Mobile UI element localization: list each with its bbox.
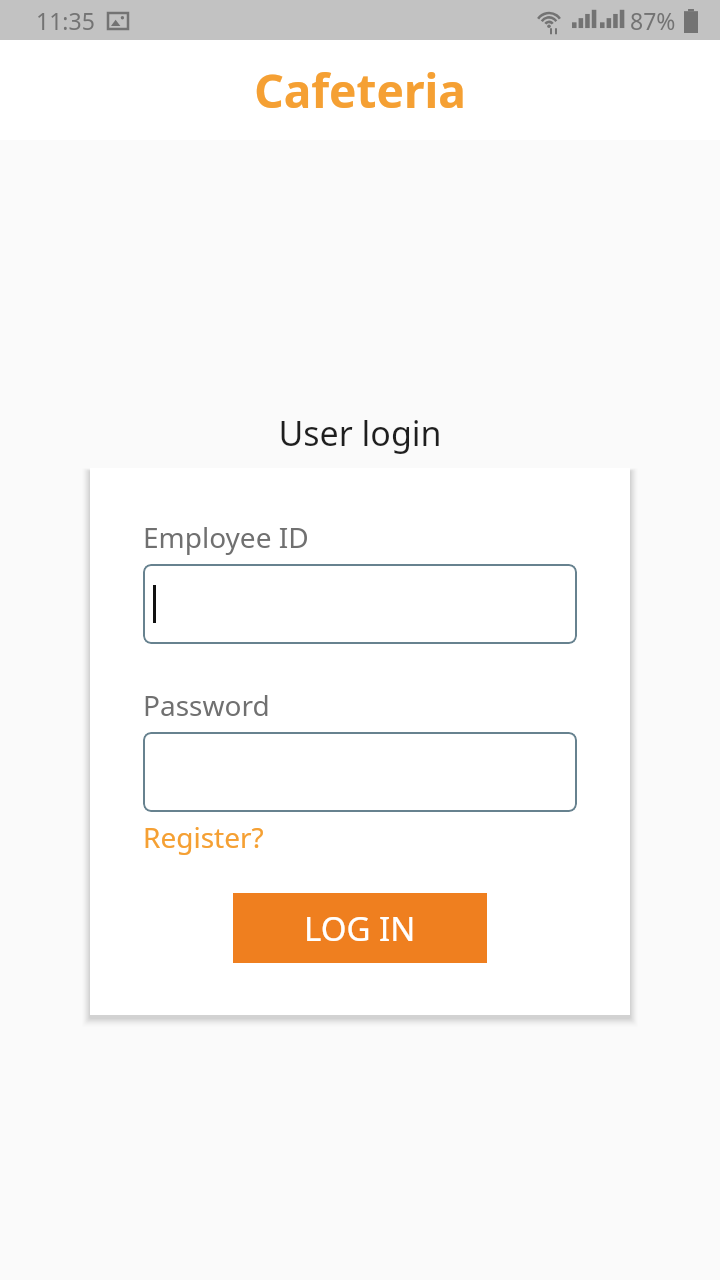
staticText: 11:35 [36,5,95,36]
staticText: User login [0,410,720,456]
button[interactable] [143,564,577,644]
staticText: Employee ID [143,518,309,556]
button[interactable] [143,732,577,812]
staticText: Cafeteria [254,59,466,122]
button[interactable]: LOG IN [233,893,487,963]
button[interactable]: Register? [143,818,264,856]
staticText: Password [143,686,270,724]
staticText: 87% [630,5,676,36]
staticText: LOG IN [304,906,416,951]
